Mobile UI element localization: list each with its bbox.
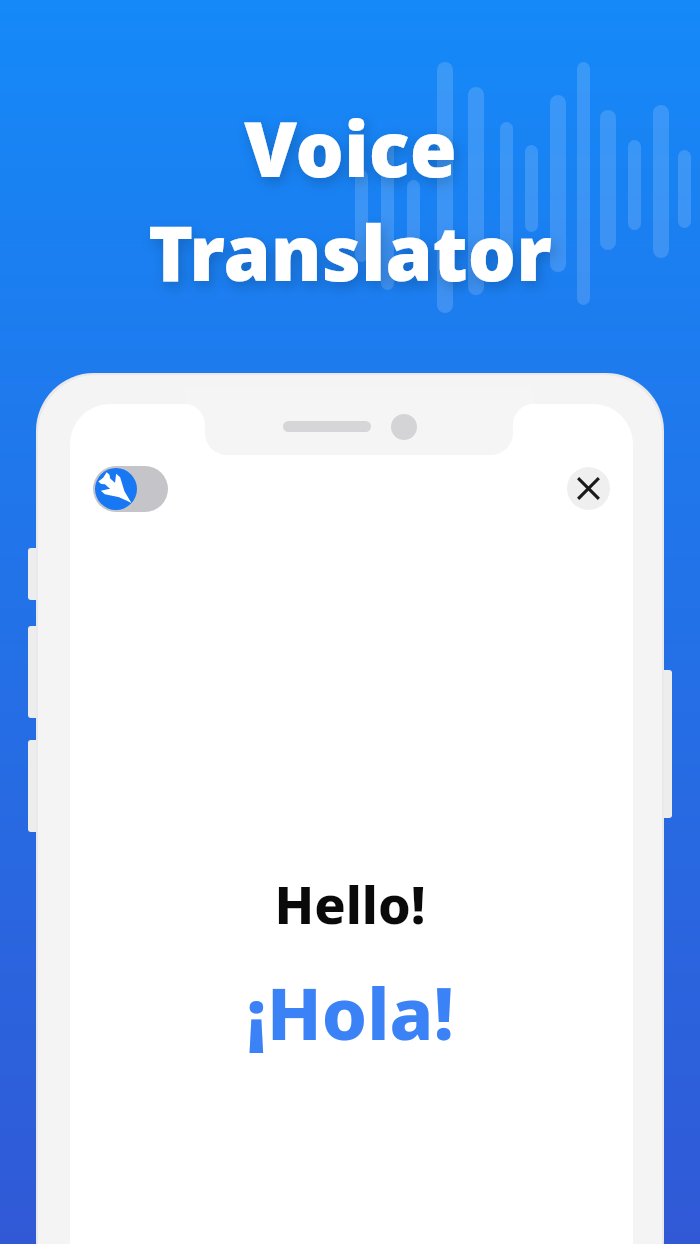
button[interactable]: Airplane mode toggle [93, 466, 168, 512]
staticText: ¡Hola! [246, 963, 454, 1061]
staticText: Hello! [274, 868, 426, 939]
staticText: Voice [244, 96, 457, 200]
button[interactable]: Close [567, 467, 610, 510]
staticText: Translator [148, 200, 552, 304]
